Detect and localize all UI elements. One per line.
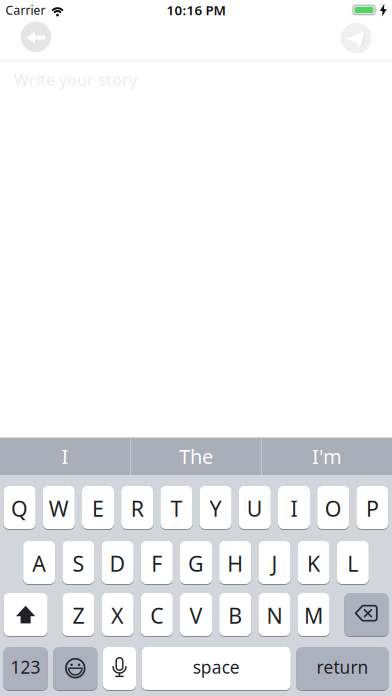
staticText: return [316,655,368,678]
button[interactable]: Back [21,22,51,52]
staticText: 10:16 PM [166,1,225,19]
button[interactable]: Emoji [53,647,97,690]
button[interactable]: C [141,593,173,636]
button[interactable]: I'm [262,437,392,475]
button[interactable]: X [102,593,134,636]
button[interactable]: N [258,593,290,636]
button[interactable]: B [219,593,251,636]
button[interactable]: H [219,541,251,584]
button[interactable]: Z [62,593,94,636]
staticText: H [227,549,243,578]
button[interactable]: K [298,541,330,584]
button[interactable]: T [160,486,192,529]
staticText: M [304,601,323,630]
button[interactable]: F [141,541,173,584]
staticText: A [32,549,46,578]
button[interactable]: R [121,486,153,529]
staticText: Q [11,494,28,523]
staticText: Y [210,494,222,523]
staticText: U [247,494,263,523]
staticText: T [170,494,182,523]
button[interactable]: return [296,647,388,690]
staticText: K [307,549,320,578]
button[interactable]: L [337,541,369,584]
button[interactable]: U [239,486,271,529]
staticText: X [111,601,124,630]
staticText: E [92,494,104,523]
button[interactable]: E [82,486,114,529]
button[interactable]: The [131,437,261,475]
staticText: R [131,494,144,523]
button[interactable]: O [317,486,349,529]
staticText: L [347,549,358,578]
button[interactable]: I [278,486,310,529]
button[interactable]: G [180,541,212,584]
button[interactable]: P [356,486,388,529]
staticText: Z [72,601,84,630]
staticText: W [49,494,69,523]
staticText: J [271,549,277,578]
staticText: I [290,494,297,523]
staticText: I'm [312,443,342,470]
staticText: space [193,655,240,678]
button[interactable]: I [0,437,130,475]
button[interactable]: M [298,593,330,636]
button[interactable]: A [23,541,55,584]
button[interactable]: W [43,486,75,529]
staticText: D [110,549,126,578]
staticText: Write your story [14,69,137,90]
button[interactable]: D [102,541,134,584]
staticText: N [266,601,282,630]
button[interactable]: Shift [4,593,48,636]
staticText: S [72,549,84,578]
staticText: V [189,601,202,630]
button[interactable]: V [180,593,212,636]
button[interactable]: Q [4,486,36,529]
button[interactable]: space [142,647,291,690]
staticText: P [366,494,379,523]
button[interactable]: Y [200,486,232,529]
staticText: F [151,549,162,578]
button[interactable]: Dictate [103,647,136,690]
button[interactable]: Numbers [4,647,48,690]
staticText: B [228,601,242,630]
staticText: 123 [11,655,41,678]
staticText: I [61,443,68,470]
staticText: Carrier [5,2,45,18]
staticText: C [150,601,163,630]
button[interactable]: J [258,541,290,584]
staticText: G [188,549,204,578]
staticText: O [325,494,342,523]
button[interactable]: Delete [344,593,388,636]
staticText: The [179,443,213,470]
button[interactable]: S [62,541,94,584]
button[interactable]: Send [341,23,372,54]
